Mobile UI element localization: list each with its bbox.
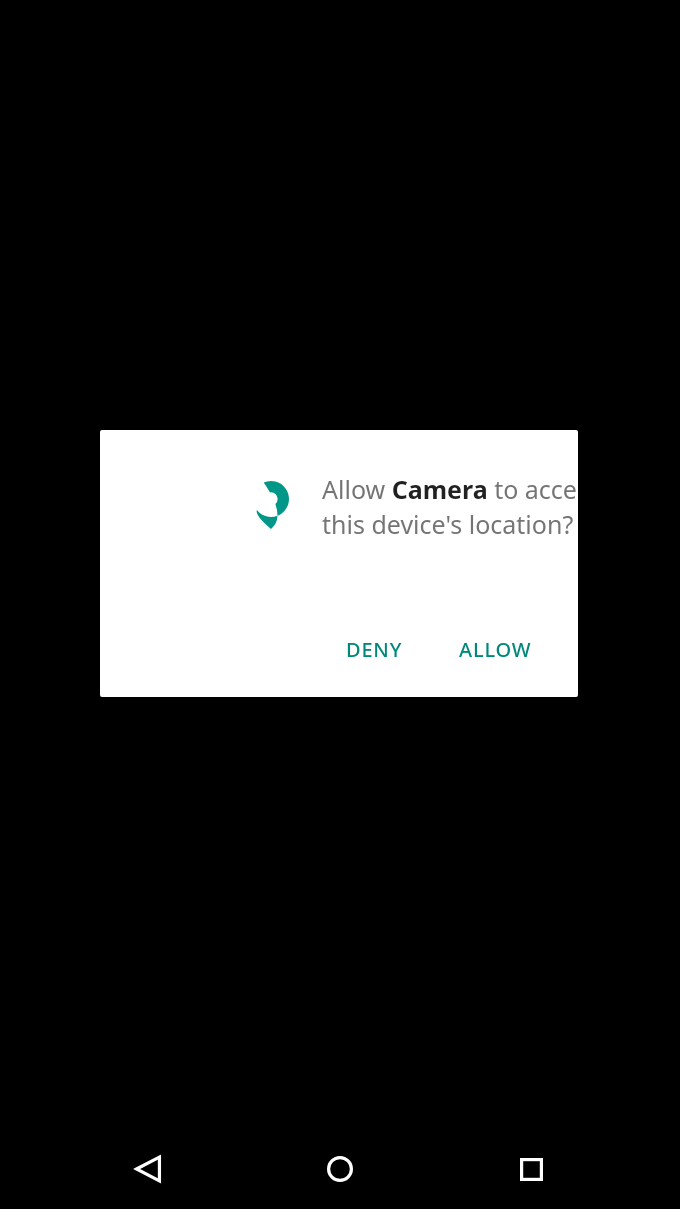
staticText: Allow Camera to access this device's loc… <box>322 472 578 542</box>
button[interactable]: Recent apps <box>501 1139 561 1199</box>
button[interactable]: DENY <box>330 626 419 673</box>
staticText: ALLOW <box>459 636 532 663</box>
button[interactable]: ALLOW <box>443 626 548 673</box>
staticText: DENY <box>346 636 403 663</box>
button[interactable]: Home <box>310 1139 370 1199</box>
button[interactable]: Back <box>118 1139 178 1199</box>
